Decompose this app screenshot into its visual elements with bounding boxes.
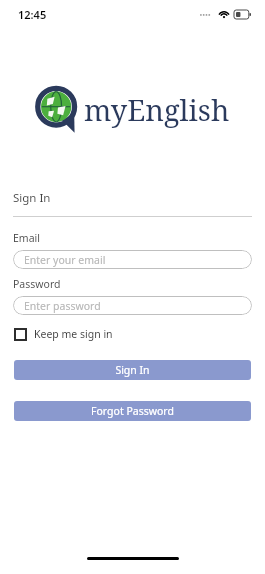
staticText: myEnglish [84,90,230,129]
staticText: Enter your email [24,253,106,267]
staticText: 12:45 [18,7,47,22]
button[interactable]: Enter your email [13,250,252,269]
other: myEnglish logo [35,86,81,132]
staticText: Forgot Password [91,404,174,418]
button[interactable]: Forgot Password [14,401,251,421]
staticText: Sign In [115,363,150,377]
button[interactable]: Sign In [14,360,251,380]
staticText: Email [13,231,40,245]
staticText: Enter password [24,299,101,313]
staticText: Password [13,277,61,291]
staticText: Sign In [13,190,51,206]
staticText: Keep me sign in [34,327,113,341]
button[interactable]: Keep me sign in [14,327,113,341]
button[interactable]: Enter password [13,296,252,315]
